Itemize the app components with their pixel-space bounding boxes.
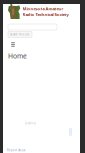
staticText: Search this site [10, 33, 30, 36]
button[interactable]: Search this site [3, 31, 32, 37]
staticText: Home [8, 51, 27, 60]
staticText: Loading [25, 121, 36, 125]
button[interactable]: Search this site [3, 24, 57, 30]
button[interactable]: Report abuse [3, 148, 26, 152]
button[interactable]: Menu [3, 41, 17, 47]
staticText: Report abuse [7, 148, 26, 152]
staticText: Radio Technical Society [22, 12, 68, 17]
staticText: Minnesota Amateur [22, 6, 63, 11]
